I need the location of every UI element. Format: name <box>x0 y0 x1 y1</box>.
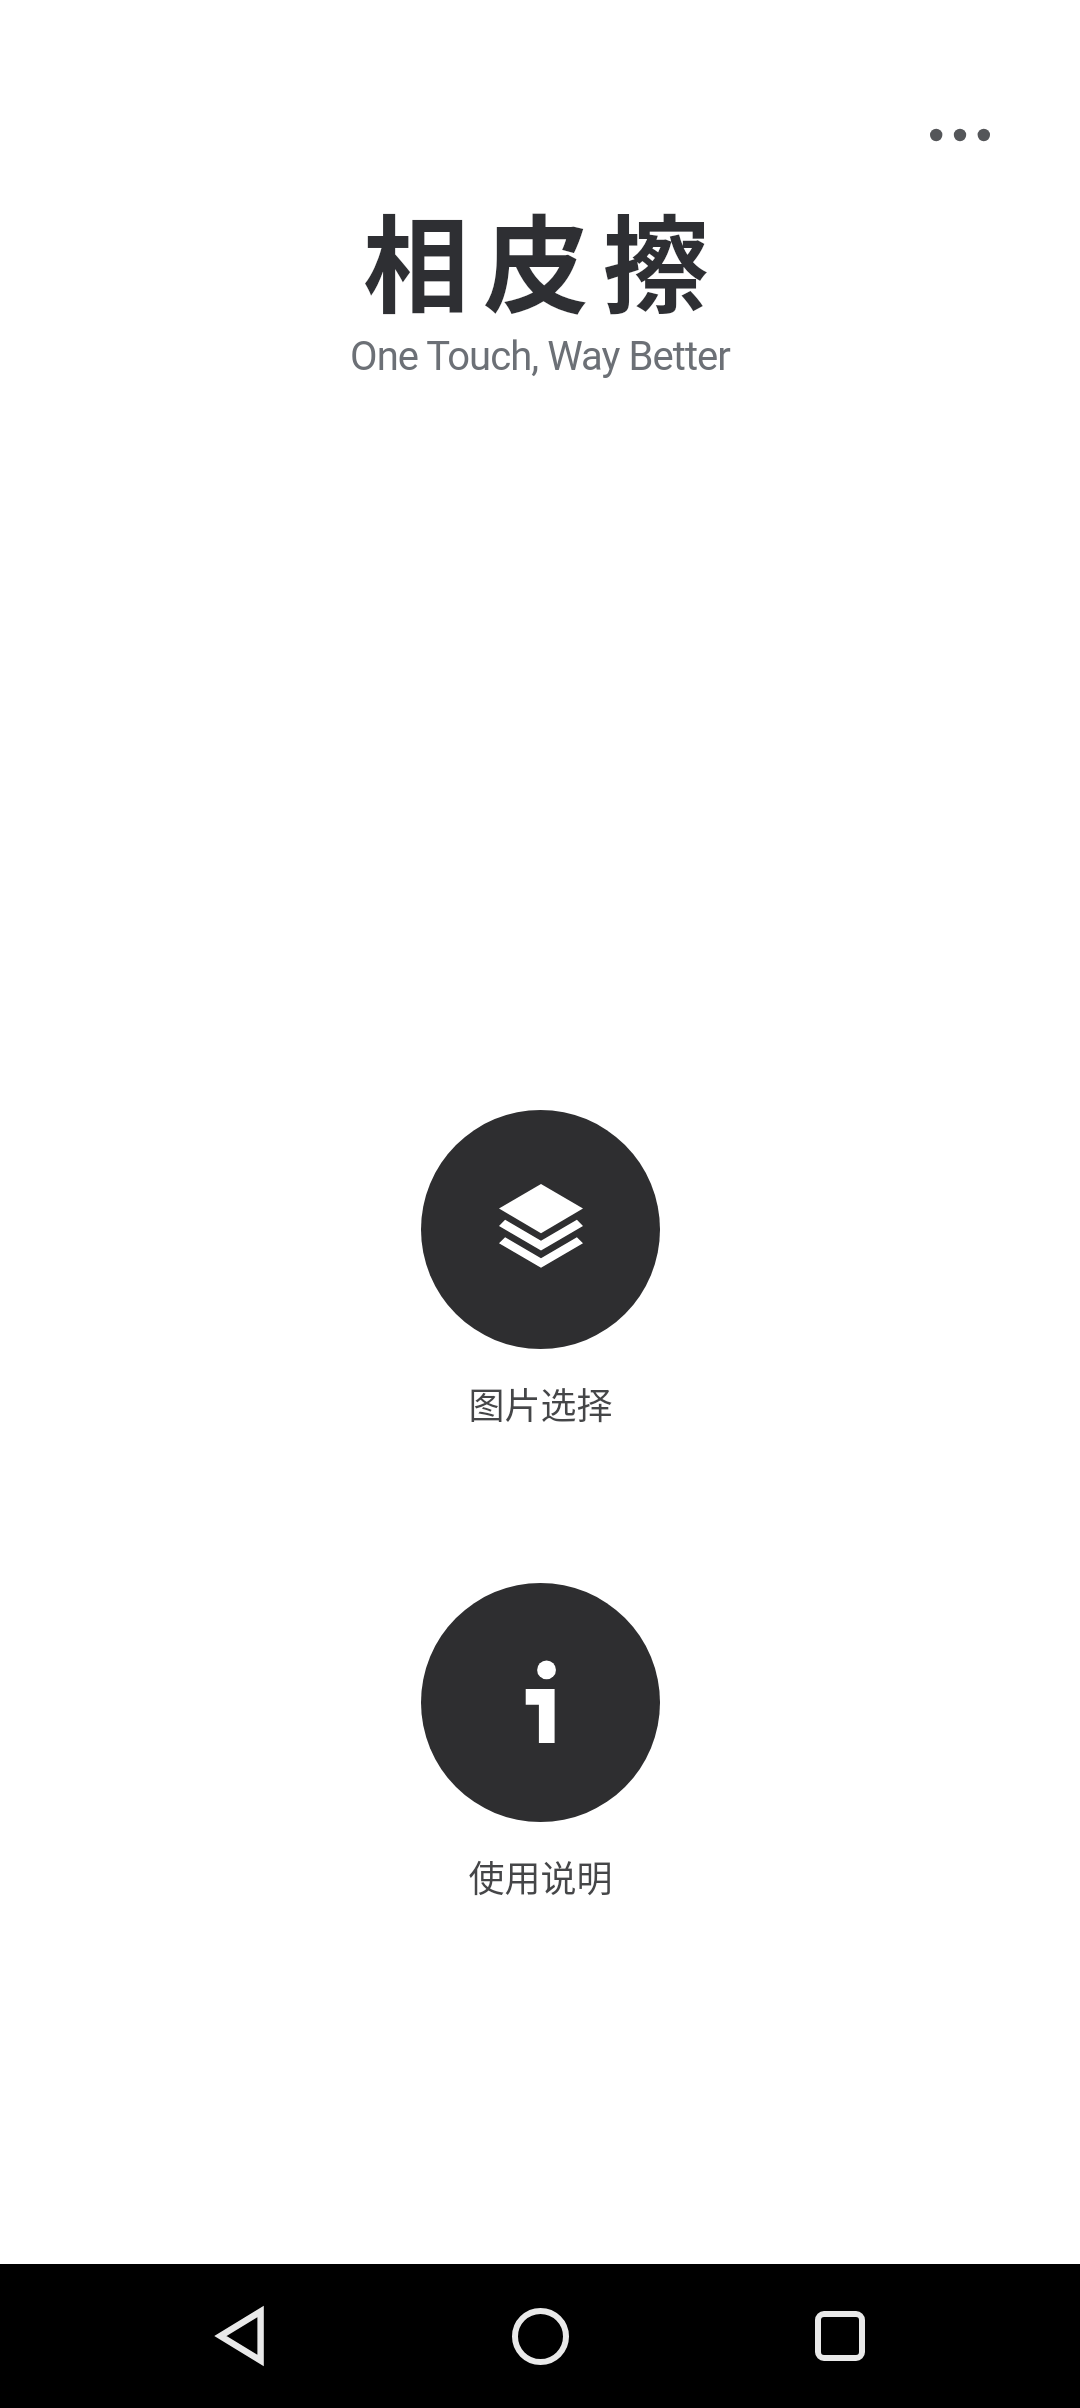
staticText: 使用说明 <box>468 1850 613 1902</box>
staticText: 相皮擦 <box>363 181 723 334</box>
button[interactable]: Instructions <box>421 1583 660 1822</box>
button[interactable]: More options <box>912 92 1008 178</box>
button[interactable]: Back <box>168 2264 312 2408</box>
button[interactable]: Select image <box>421 1110 660 1349</box>
button[interactable]: Recent apps <box>768 2264 912 2408</box>
button[interactable]: Home <box>468 2264 612 2408</box>
staticText: 图片选择 <box>468 1377 613 1429</box>
staticText: One Touch, Way Better <box>350 333 730 380</box>
